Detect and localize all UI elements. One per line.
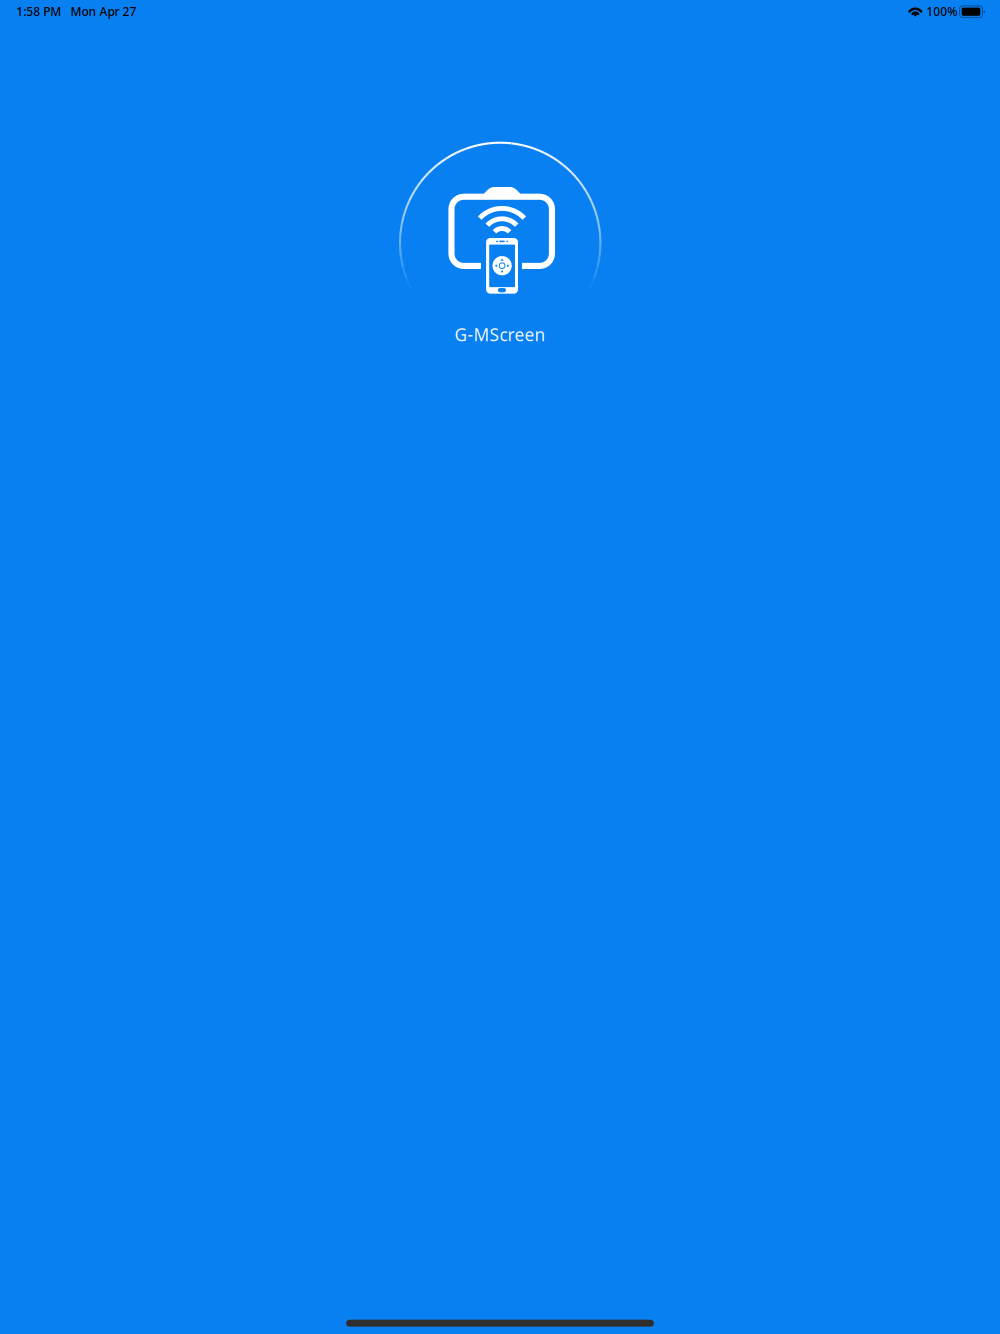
staticText: 100%	[926, 3, 957, 19]
staticText: G-MScreen	[454, 323, 545, 346]
staticText: 1:58 PM	[16, 3, 61, 19]
staticText: Mon Apr 27	[70, 3, 136, 19]
